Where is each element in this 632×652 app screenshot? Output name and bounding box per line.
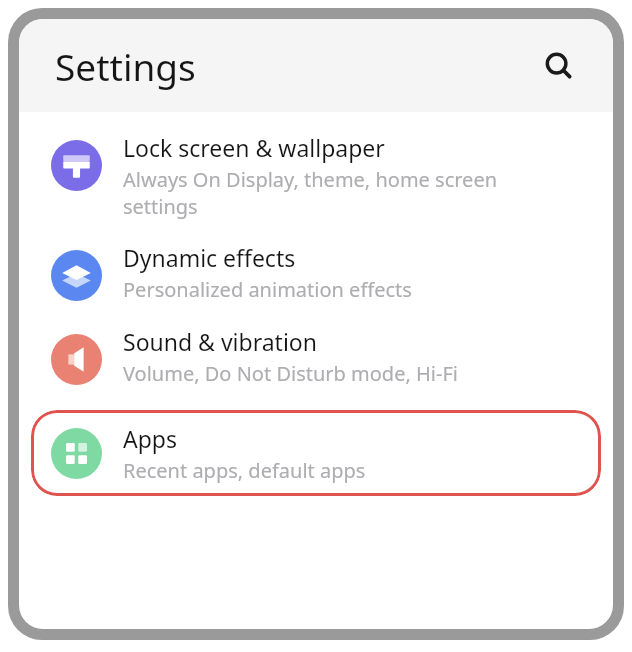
staticText: Sound & vibration bbox=[123, 326, 317, 357]
staticText: Volume, Do Not Disturb mode, Hi-Fi bbox=[123, 360, 458, 387]
staticText: Settings bbox=[55, 41, 196, 91]
button[interactable]: Dynamic effects bbox=[19, 236, 613, 320]
staticText: Always On Display, theme, home screen se… bbox=[123, 166, 498, 220]
staticText: Recent apps, default apps bbox=[123, 457, 366, 484]
button[interactable]: Sound & vibration bbox=[19, 320, 613, 404]
staticText: Lock screen & wallpaper bbox=[123, 132, 385, 163]
button[interactable]: Apps bbox=[31, 410, 601, 496]
staticText: Personalized animation effects bbox=[123, 276, 412, 303]
button[interactable]: Lock screen & wallpaper bbox=[19, 126, 613, 236]
button[interactable]: Search bbox=[535, 42, 583, 90]
staticText: Apps bbox=[123, 423, 178, 454]
staticText: Dynamic effects bbox=[123, 242, 296, 273]
